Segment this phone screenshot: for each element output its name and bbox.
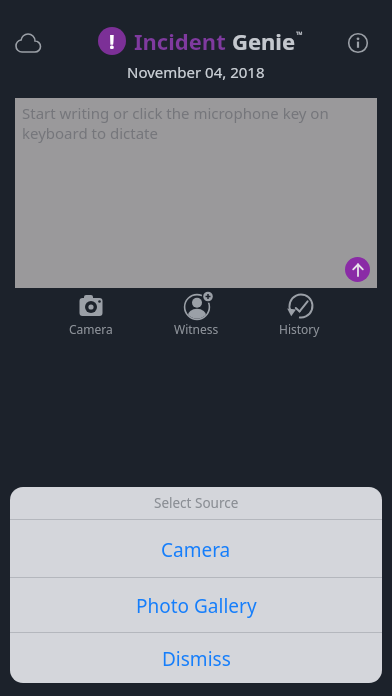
staticText: Witness <box>174 321 219 337</box>
staticText: November 04, 2018 <box>127 62 265 82</box>
button[interactable] <box>10 27 46 59</box>
button[interactable]: Photo Gallery <box>10 579 382 632</box>
staticText: ™ <box>296 28 303 40</box>
staticText: History <box>279 321 320 337</box>
button[interactable]: Camera <box>61 292 121 340</box>
staticText: Genie <box>232 26 296 56</box>
button[interactable] <box>345 257 370 282</box>
button[interactable]: Start writing or click the microphone ke… <box>15 98 377 288</box>
staticText: Select Source <box>154 494 239 512</box>
staticText: Photo Gallery <box>136 593 257 619</box>
staticText: Camera <box>69 321 113 337</box>
button[interactable]: Camera <box>10 523 382 577</box>
staticText: Incident <box>134 26 226 56</box>
button[interactable]: Dismiss <box>10 634 382 683</box>
button[interactable] <box>340 26 376 60</box>
staticText: Start writing or click the microphone ke… <box>22 103 329 143</box>
button[interactable]: Witness <box>166 292 226 340</box>
staticText: Camera <box>161 537 231 563</box>
staticText: ! <box>109 28 115 55</box>
button[interactable]: History <box>269 292 329 340</box>
staticText: Dismiss <box>162 646 231 672</box>
